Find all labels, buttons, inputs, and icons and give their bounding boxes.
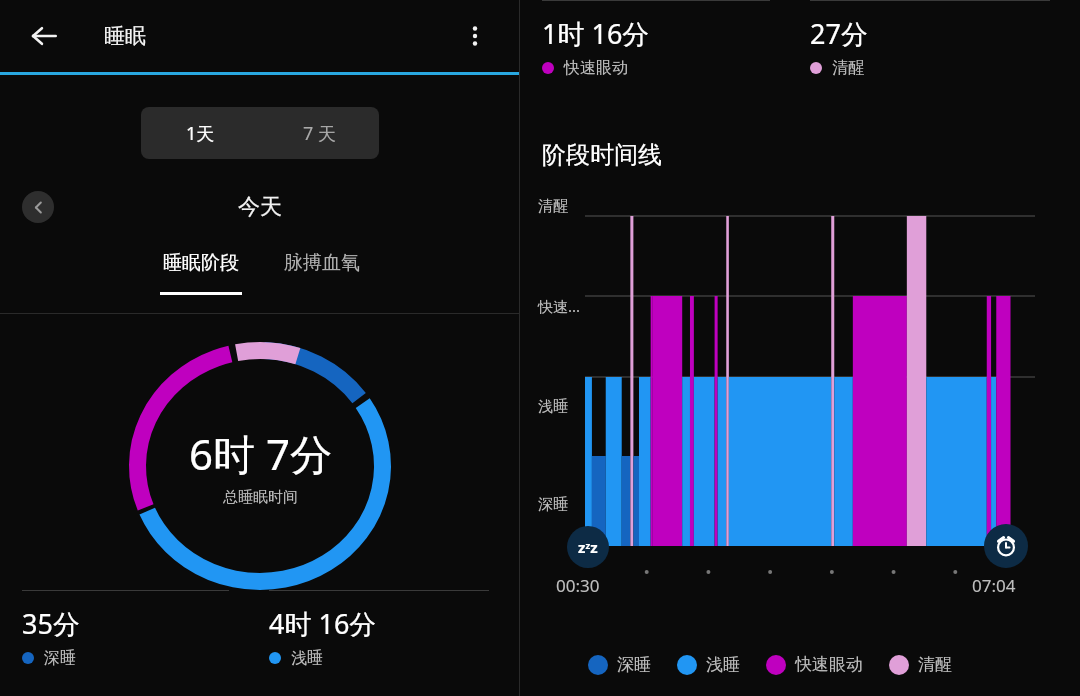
button[interactable]: 4时 16分 <box>269 590 497 668</box>
staticText: 27分 <box>810 15 868 52</box>
staticText: 4时 16分 <box>269 605 377 642</box>
button[interactable]: 快速眼动 <box>766 654 863 675</box>
button[interactable]: 27分 <box>810 0 1058 78</box>
staticText: 深睡 <box>538 495 568 514</box>
staticText: 清醒 <box>918 654 952 675</box>
staticText: zᶻz <box>578 537 598 557</box>
button[interactable]: Sleep start <box>567 526 609 568</box>
button[interactable]: Previous day <box>22 191 54 223</box>
staticText: 阶段时间线 <box>542 140 662 170</box>
button[interactable]: 7 天 <box>260 107 379 159</box>
button[interactable]: 睡眠阶段 <box>154 251 248 295</box>
staticText: 浅睡 <box>538 397 568 416</box>
button[interactable]: 清醒 <box>889 654 952 675</box>
staticText: 睡眠 <box>104 23 146 49</box>
staticText: 总睡眠时间 <box>223 488 298 507</box>
staticText: 07:04 <box>972 574 1016 597</box>
button[interactable]: 浅睡 <box>677 654 740 675</box>
staticText: 快速眼动 <box>564 58 628 78</box>
staticText: 35分 <box>22 605 80 642</box>
button[interactable]: 1时 16分 <box>542 0 778 78</box>
button[interactable]: Wake alarm <box>984 524 1028 568</box>
button[interactable]: More options <box>453 14 497 58</box>
button[interactable]: Back <box>20 12 68 60</box>
staticText: 浅睡 <box>291 648 323 668</box>
button[interactable]: 脉搏血氧 <box>278 251 366 275</box>
staticText: 今天 <box>238 193 282 221</box>
staticText: 脉搏血氧 <box>284 251 360 275</box>
staticText: 深睡 <box>617 654 651 675</box>
staticText: 清醒 <box>832 58 864 78</box>
staticText: 睡眠阶段 <box>163 251 239 275</box>
button[interactable]: 35分 <box>22 590 237 668</box>
staticText: 浅睡 <box>706 654 740 675</box>
staticText: 快速眼动 <box>795 654 863 675</box>
staticText: 1时 16分 <box>542 15 650 52</box>
staticText: 1天 <box>186 121 215 146</box>
staticText: 00:30 <box>556 574 600 597</box>
button[interactable]: 深睡 <box>588 654 651 675</box>
staticText: 6时 7分 <box>189 425 332 482</box>
staticText: 快速... <box>538 296 581 316</box>
staticText: 清醒 <box>538 197 568 216</box>
staticText: 深睡 <box>44 648 76 668</box>
staticText: 7 天 <box>303 121 336 146</box>
button[interactable]: 1天 <box>141 107 260 159</box>
